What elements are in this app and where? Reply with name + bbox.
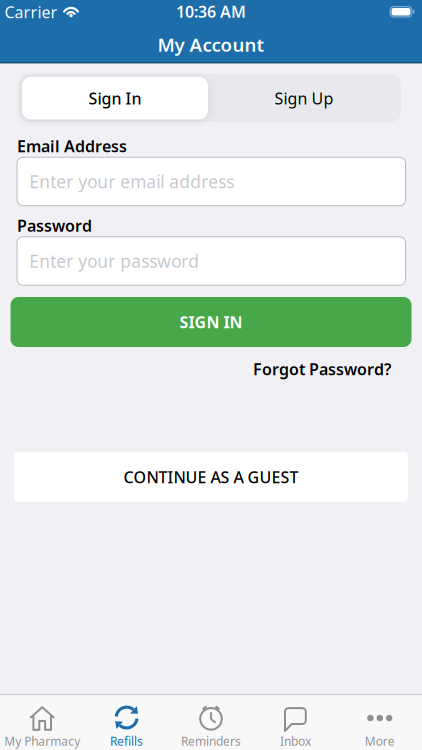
button[interactable]: More — [338, 703, 422, 749]
button[interactable]: Sign Up — [211, 77, 397, 119]
staticText: Email Address — [17, 135, 127, 157]
staticText: Reminders — [181, 733, 241, 749]
button[interactable]: SIGN IN — [10, 297, 411, 347]
staticText: Enter your password — [29, 249, 199, 272]
button[interactable]: Reminders — [169, 703, 253, 749]
button[interactable]: Inbox — [253, 703, 338, 749]
button[interactable]: My Pharmacy — [0, 703, 84, 749]
staticText: Carrier — [4, 1, 57, 23]
staticText: Enter your email address — [29, 170, 234, 193]
staticText: More — [365, 733, 395, 749]
button[interactable]: Forgot Password? — [253, 358, 391, 380]
button[interactable]: CONTINUE AS A GUEST — [14, 452, 408, 502]
staticText: My Account — [157, 32, 264, 57]
staticText: Password — [17, 215, 92, 236]
staticText: CONTINUE AS A GUEST — [123, 466, 298, 488]
staticText: 10:36 AM — [176, 1, 246, 22]
button[interactable]: Sign In — [22, 77, 208, 119]
button[interactable]: Refills — [84, 703, 169, 749]
staticText: Inbox — [280, 733, 311, 749]
staticText: My Pharmacy — [4, 733, 80, 749]
staticText: Forgot Password? — [253, 358, 391, 380]
staticText: Sign In — [88, 88, 141, 109]
staticText: SIGN IN — [179, 311, 242, 333]
staticText: Sign Up — [274, 88, 333, 109]
staticText: Refills — [110, 733, 143, 749]
